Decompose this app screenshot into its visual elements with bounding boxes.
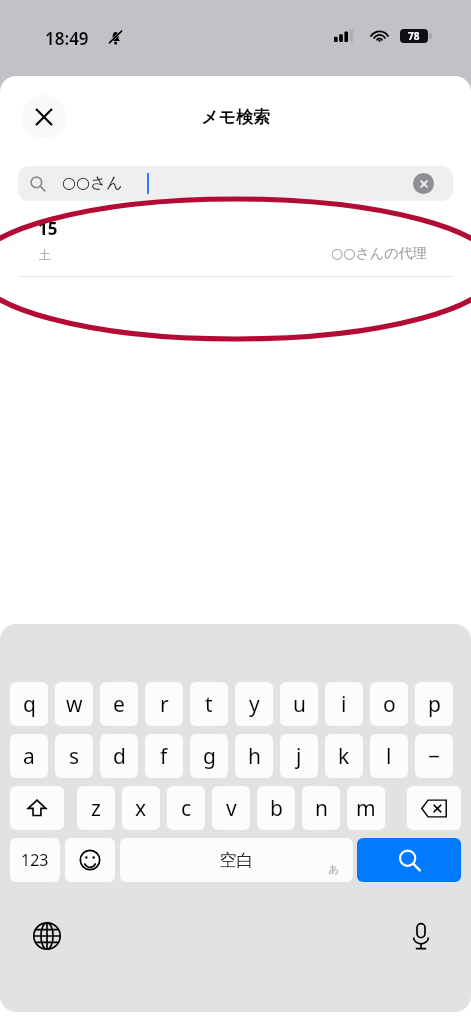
- staticText: w: [66, 690, 83, 719]
- button[interactable]: クリア: [413, 173, 434, 194]
- staticText: 15: [38, 217, 58, 240]
- button[interactable]: u: [280, 682, 318, 726]
- button[interactable]: a: [10, 734, 48, 778]
- staticText: l: [386, 742, 392, 771]
- staticText: o: [383, 690, 396, 719]
- staticText: t: [205, 690, 213, 719]
- staticText: h: [248, 742, 261, 771]
- button[interactable]: p: [415, 682, 453, 726]
- button[interactable]: s: [55, 734, 93, 778]
- staticText: x: [135, 794, 147, 823]
- button[interactable]: d: [100, 734, 138, 778]
- button[interactable]: 空白: [120, 838, 353, 882]
- button[interactable]: v: [212, 786, 250, 830]
- staticText: i: [341, 690, 347, 719]
- button[interactable]: z: [77, 786, 115, 830]
- staticText: s: [69, 742, 80, 771]
- button[interactable]: g: [190, 734, 228, 778]
- staticText: k: [338, 742, 350, 771]
- staticText: 土: [39, 247, 51, 262]
- staticText: v: [226, 794, 237, 823]
- button[interactable]: t: [190, 682, 228, 726]
- button[interactable]: k: [325, 734, 363, 778]
- staticText: z: [91, 794, 101, 823]
- button[interactable]: j: [280, 734, 318, 778]
- staticText: y: [249, 690, 260, 719]
- staticText: r: [160, 690, 169, 719]
- staticText: a: [23, 742, 35, 771]
- button[interactable]: 15: [0, 208, 471, 277]
- button[interactable]: q: [10, 682, 48, 726]
- staticText: 123: [21, 849, 49, 871]
- button[interactable]: 削除: [407, 786, 461, 830]
- button[interactable]: x: [122, 786, 160, 830]
- staticText: e: [113, 690, 125, 719]
- button[interactable]: c: [167, 786, 205, 830]
- staticText: g: [203, 742, 216, 771]
- button[interactable]: i: [325, 682, 363, 726]
- button[interactable]: m: [347, 786, 385, 830]
- staticText: 18:49: [45, 27, 89, 50]
- button[interactable]: 閉じる: [22, 95, 66, 139]
- button[interactable]: −: [415, 734, 453, 778]
- button[interactable]: 123: [10, 838, 60, 882]
- button[interactable]: 検索: [357, 838, 461, 882]
- button[interactable]: l: [370, 734, 408, 778]
- staticText: メモ検索: [0, 107, 471, 128]
- staticText: u: [293, 690, 306, 719]
- button[interactable]: n: [302, 786, 340, 830]
- button[interactable]: シフト: [10, 786, 64, 830]
- staticText: あ: [328, 862, 340, 876]
- button[interactable]: b: [257, 786, 295, 830]
- button[interactable]: 言語切り替え: [29, 918, 65, 954]
- staticText: ○○さん: [62, 173, 123, 193]
- staticText: 空白: [120, 850, 353, 871]
- button[interactable]: y: [235, 682, 273, 726]
- staticText: f: [160, 742, 168, 771]
- button[interactable]: 絵文字: [65, 838, 115, 882]
- button[interactable]: h: [235, 734, 273, 778]
- staticText: ○○さんの代理: [331, 245, 427, 263]
- button[interactable]: f: [145, 734, 183, 778]
- staticText: q: [23, 690, 36, 719]
- button[interactable]: w: [55, 682, 93, 726]
- staticText: −: [428, 742, 441, 771]
- staticText: b: [270, 794, 283, 823]
- button[interactable]: e: [100, 682, 138, 726]
- staticText: j: [296, 742, 302, 771]
- staticText: n: [315, 794, 328, 823]
- button[interactable]: ○○さん: [18, 166, 453, 201]
- staticText: c: [181, 794, 192, 823]
- staticText: d: [113, 742, 126, 771]
- button[interactable]: 音声入力: [403, 918, 439, 954]
- staticText: 78: [408, 29, 420, 43]
- button[interactable]: r: [145, 682, 183, 726]
- staticText: p: [428, 690, 441, 719]
- staticText: m: [356, 794, 376, 823]
- button[interactable]: o: [370, 682, 408, 726]
